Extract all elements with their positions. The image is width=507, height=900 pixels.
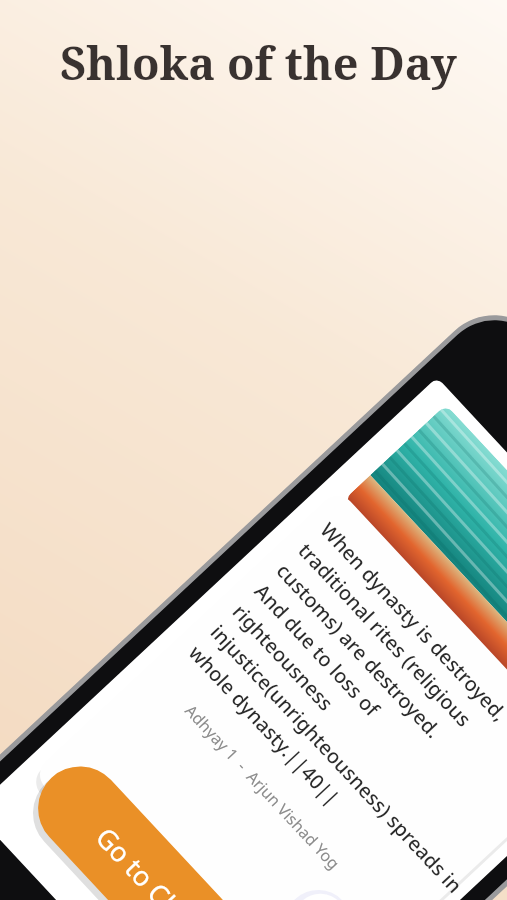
button[interactable]: Share bbox=[342, 558, 388, 604]
button[interactable]: Share on Twitter bbox=[452, 650, 498, 696]
button[interactable]: Share on Facebook bbox=[400, 604, 446, 650]
button[interactable]: Go to Chapters bbox=[258, 592, 473, 787]
